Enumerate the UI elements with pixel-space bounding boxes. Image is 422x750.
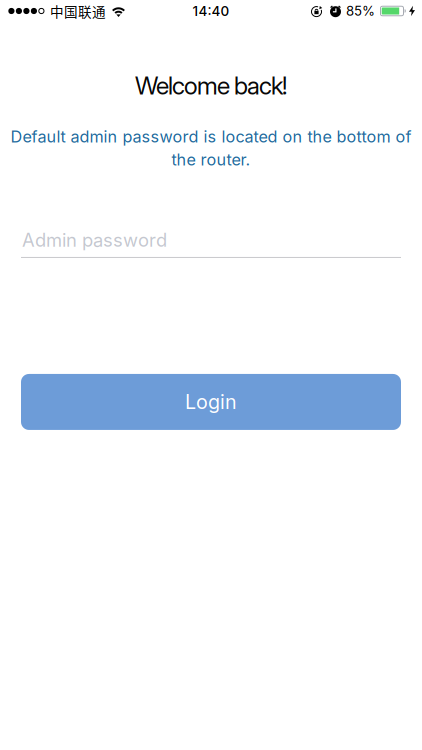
button[interactable]: Admin password [0,229,422,258]
staticText: Login [185,390,237,413]
staticText: the router. [171,150,250,169]
staticText: 中国联通 [50,1,106,21]
staticText: 14:40 [192,3,229,19]
staticText: Welcome back! [135,71,287,100]
staticText: 85% [346,3,375,19]
staticText: Admin password [22,229,167,251]
button[interactable]: Login [0,374,422,430]
staticText: Default admin password is located on the… [10,127,411,146]
